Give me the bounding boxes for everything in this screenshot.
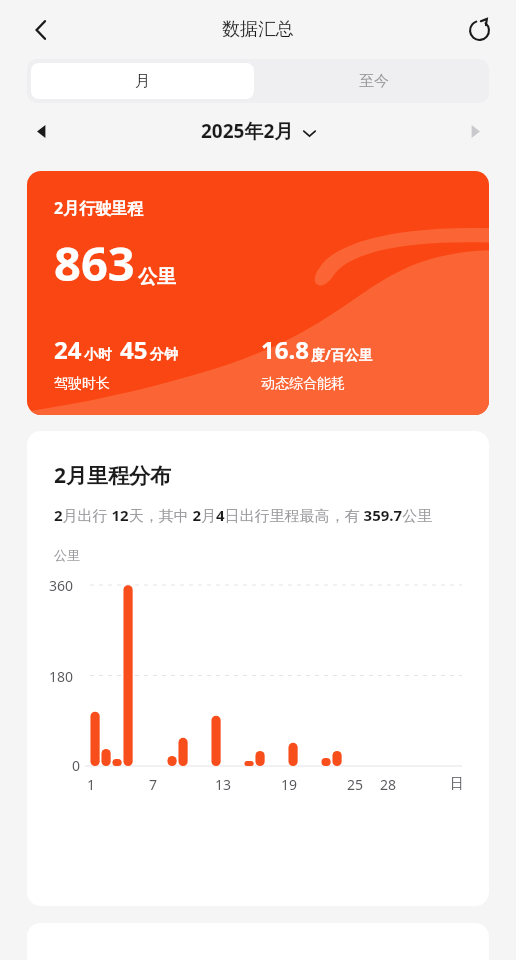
- staticText: 24: [54, 333, 82, 366]
- button[interactable]: 下一月: [456, 112, 494, 150]
- staticText: 360: [49, 576, 74, 595]
- staticText: 25: [347, 775, 364, 794]
- button[interactable]: 2025年2月: [201, 118, 316, 144]
- button[interactable]: 返回: [20, 9, 62, 51]
- staticText: 公里: [138, 265, 176, 289]
- staticText: 2025年2月: [201, 118, 294, 144]
- staticText: 2月行驶里程: [54, 197, 144, 219]
- staticText: 13: [215, 775, 232, 794]
- staticText: 28: [380, 775, 397, 794]
- button[interactable]: 至今: [258, 59, 489, 103]
- staticText: 月: [135, 72, 150, 91]
- button[interactable]: 上一月: [22, 112, 60, 150]
- staticText: 日: [450, 775, 464, 793]
- staticText: 数据汇总: [222, 18, 294, 41]
- staticText: 7: [149, 775, 158, 794]
- staticText: 1: [87, 775, 96, 794]
- staticText: 180: [49, 667, 74, 686]
- staticText: 公里: [54, 547, 80, 563]
- staticText: 863: [54, 231, 135, 295]
- staticText: 至今: [359, 72, 389, 91]
- staticText: 45: [120, 333, 148, 366]
- button[interactable]: 2月行驶里程: [27, 171, 489, 415]
- staticText: 分钟: [150, 346, 178, 364]
- staticText: 19: [281, 775, 298, 794]
- staticText: 0: [72, 756, 81, 775]
- staticText: 16.8: [261, 333, 309, 366]
- button[interactable]: 刷新: [458, 9, 500, 51]
- staticText: 动态综合能耗: [261, 375, 345, 393]
- staticText: 度/百公里: [311, 345, 373, 364]
- staticText: 2月出行 12天，其中 2月4日出行里程最高，有 359.7公里: [54, 505, 433, 525]
- staticText: 驾驶时长: [54, 375, 110, 393]
- staticText: 2月里程分布: [54, 461, 172, 490]
- button[interactable]: 月: [31, 63, 254, 99]
- staticText: 小时: [84, 346, 112, 364]
